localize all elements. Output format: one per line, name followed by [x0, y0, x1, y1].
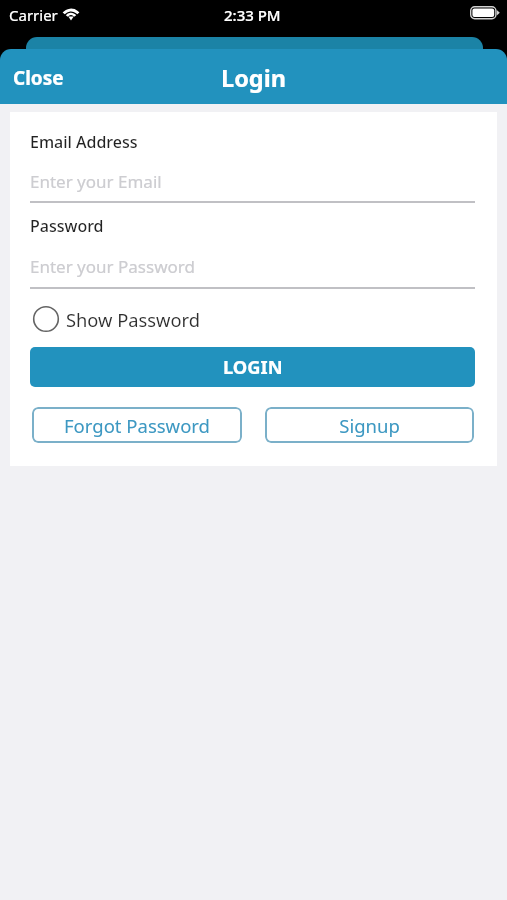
staticText: Enter your Password [30, 255, 195, 278]
button[interactable]: Close [0, 54, 80, 100]
staticText: Enter your Email [30, 170, 162, 193]
staticText: Password [30, 215, 104, 237]
button[interactable]: Signup [265, 407, 474, 443]
staticText: Show Password [66, 307, 200, 332]
staticText: Close [13, 65, 64, 91]
other: Battery [470, 6, 500, 20]
other: Wifi [61, 5, 81, 20]
button[interactable]: Forgot Password [32, 407, 242, 443]
staticText: LOGIN [223, 354, 283, 379]
staticText: Carrier [9, 5, 58, 25]
staticText: Login [221, 62, 286, 94]
staticText: Signup [339, 413, 400, 438]
staticText: Email Address [30, 131, 138, 153]
staticText: 2:33 PM [224, 5, 281, 25]
button[interactable]: LOGIN [30, 347, 475, 387]
button[interactable]: Show Password [33, 304, 200, 334]
staticText: Forgot Password [64, 413, 210, 438]
